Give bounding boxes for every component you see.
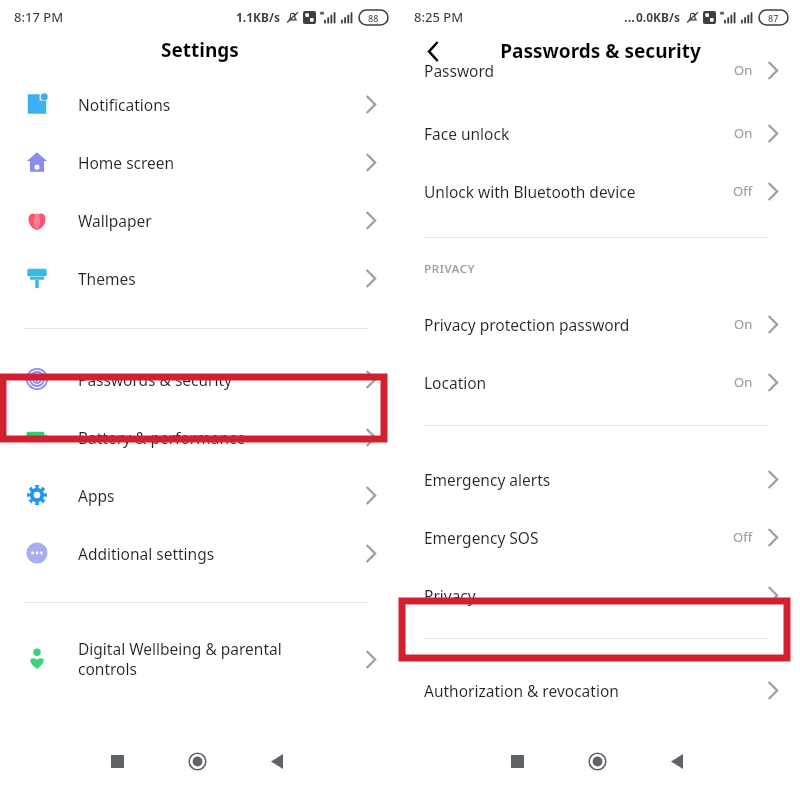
staticText: Apps — [78, 485, 365, 506]
staticText: Off — [733, 528, 753, 546]
button[interactable]: Battery & performance — [0, 408, 400, 466]
staticText: Face unlock — [424, 123, 734, 144]
staticText: Passwords & security — [500, 38, 701, 64]
button[interactable]: Recents — [102, 746, 132, 776]
staticText: Location — [424, 372, 734, 393]
button[interactable]: Privacy protection password — [400, 295, 800, 353]
staticText: Emergency alerts — [424, 469, 767, 490]
staticText: PRIVACY — [424, 261, 476, 277]
staticText: Battery & performance — [78, 427, 365, 448]
staticText: On — [734, 315, 753, 333]
staticText: Authorization & revocation — [424, 680, 767, 701]
button[interactable]: Passwords & security — [0, 350, 400, 408]
staticText: On — [734, 124, 753, 142]
button[interactable]: Authorization & revocation — [400, 661, 800, 719]
staticText: 8:25 PM — [414, 8, 464, 26]
button[interactable]: Emergency alerts — [400, 450, 800, 508]
button[interactable]: Wallpaper — [0, 191, 400, 249]
staticText: On — [734, 373, 753, 391]
staticText: 0.0KB/s — [636, 9, 681, 25]
staticText: 8:17 PM — [14, 8, 64, 26]
staticText: On — [734, 61, 753, 79]
staticText: Privacy — [424, 585, 767, 606]
staticText: Settings — [161, 37, 239, 63]
staticText: Privacy protection password — [424, 314, 734, 335]
button[interactable]: Additional settings — [0, 524, 400, 582]
staticText: Unlock with Bluetooth device — [424, 181, 733, 202]
staticText: Themes — [78, 268, 365, 289]
button[interactable]: Recents — [502, 746, 532, 776]
button[interactable]: Digital Wellbeing & parental controls — [0, 628, 400, 690]
staticText: 88 — [368, 12, 379, 24]
staticText: Emergency SOS — [424, 527, 733, 548]
staticText: Passwords & security — [78, 369, 365, 390]
button[interactable]: Notifications — [0, 75, 400, 133]
button[interactable]: Back — [418, 36, 448, 66]
staticText: Digital Wellbeing & parental controls — [78, 638, 365, 680]
staticText: Notifications — [78, 94, 365, 115]
staticText: Off — [733, 182, 753, 200]
button[interactable]: Emergency SOS — [400, 508, 800, 566]
button[interactable]: Back — [662, 746, 692, 776]
button[interactable]: Back — [262, 746, 292, 776]
staticText: Home screen — [78, 152, 365, 173]
button[interactable]: Home screen — [0, 133, 400, 191]
button[interactable]: Unlock with Bluetooth device — [400, 162, 800, 220]
staticText: ... — [624, 8, 635, 26]
button[interactable]: Home — [181, 745, 213, 777]
button[interactable]: Face unlock — [400, 104, 800, 162]
button[interactable]: Password — [400, 52, 800, 88]
button[interactable]: Apps — [0, 466, 400, 524]
button[interactable]: Location — [400, 353, 800, 411]
button[interactable]: Themes — [0, 249, 400, 307]
button[interactable]: Privacy — [400, 566, 800, 624]
staticText: Wallpaper — [78, 210, 365, 231]
button[interactable]: Home — [581, 745, 613, 777]
staticText: Password — [424, 60, 734, 81]
staticText: 87 — [768, 12, 779, 24]
staticText: 1.1KB/s — [236, 9, 281, 25]
staticText: Additional settings — [78, 543, 365, 564]
